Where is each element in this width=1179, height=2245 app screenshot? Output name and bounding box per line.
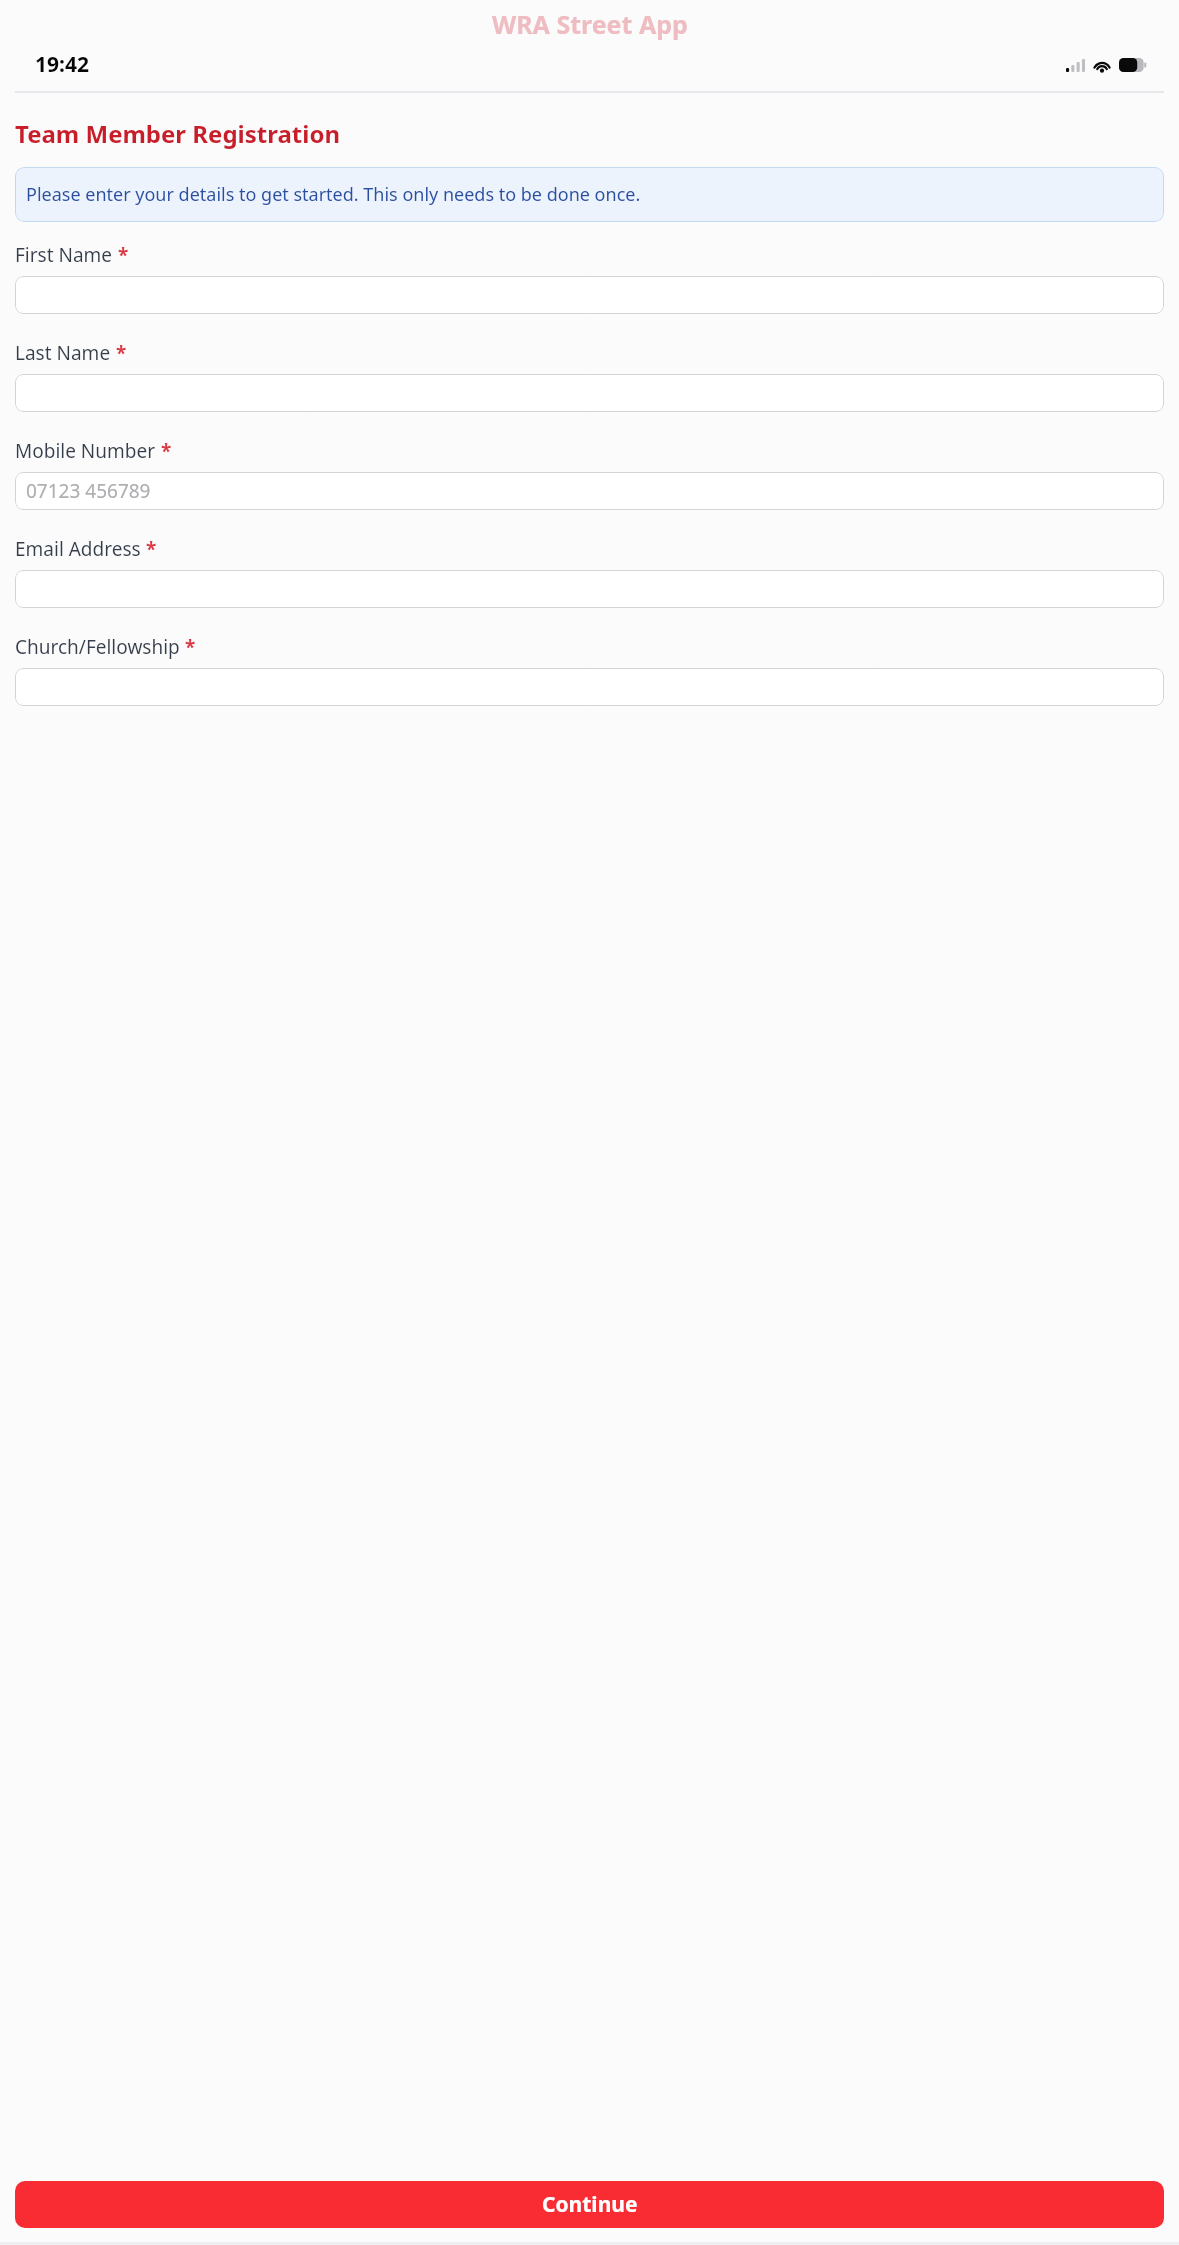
staticText: Continue (542, 2190, 638, 2219)
staticText: 19:42 (35, 50, 89, 79)
staticText: 07123 456789 (26, 478, 151, 504)
button[interactable]: 07123 456789 (15, 472, 1164, 510)
button[interactable] (15, 570, 1164, 608)
staticText: * (146, 536, 157, 562)
staticText: Last Name (15, 340, 111, 366)
staticText: * (185, 634, 196, 660)
staticText: WRA Street App (492, 7, 688, 41)
staticText: Please enter your details to get started… (26, 182, 641, 207)
button[interactable] (15, 276, 1164, 314)
other: Battery 74 percent (1119, 58, 1147, 72)
staticText: Email Address (15, 536, 141, 562)
staticText: Team Member Registration (15, 117, 341, 150)
staticText: Church/Fellowship (15, 634, 180, 660)
staticText: * (116, 340, 127, 366)
other: Wi-Fi (1093, 59, 1111, 72)
other: Cellular signal (1066, 59, 1085, 72)
staticText: * (118, 242, 129, 268)
staticText: First Name (15, 242, 113, 268)
staticText: * (161, 438, 172, 464)
button[interactable] (15, 374, 1164, 412)
button[interactable]: Continue (15, 2181, 1164, 2228)
button[interactable] (15, 668, 1164, 706)
staticText: Mobile Number (15, 438, 156, 464)
